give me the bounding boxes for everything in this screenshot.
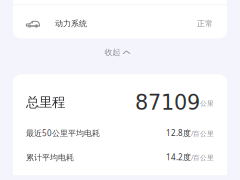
staticText: /百公里 [191,153,214,162]
staticText: 动力系统 [55,19,87,28]
staticText: 正常 [197,19,213,28]
staticText: 总里程 [26,94,65,110]
staticText: 收起 [104,47,120,57]
button[interactable]: 收起 [90,38,149,74]
staticText: /百公里 [191,129,214,138]
staticText: 87109 [135,90,200,115]
staticText: 14.2度 [166,152,191,162]
staticText: 最近50公里平均电耗 [26,128,100,138]
staticText: 累计平均电耗 [26,153,74,162]
staticText: 公里 [200,99,214,107]
button[interactable]: 动力系统 [13,5,227,38]
staticText: 12.8度 [166,128,191,138]
